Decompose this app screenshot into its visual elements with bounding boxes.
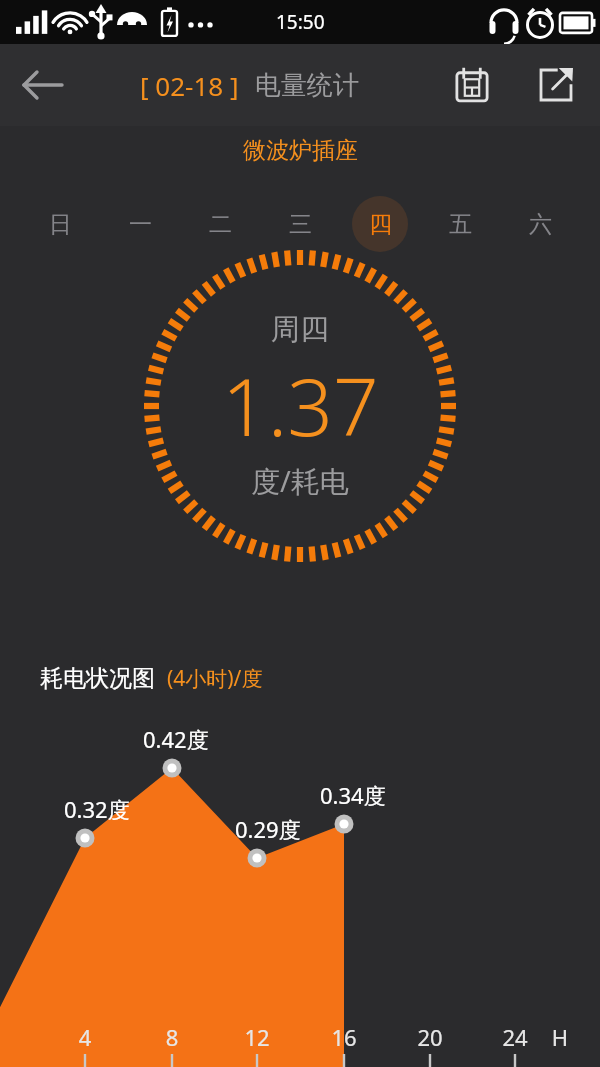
staticText: 度/耗电 [251, 461, 349, 501]
staticText: H [540, 1022, 580, 1052]
staticText: 1.37 [222, 350, 379, 459]
staticText: 一 [129, 210, 152, 239]
staticText: 微波炉插座 [243, 136, 358, 165]
button[interactable]: 五 [432, 196, 488, 252]
staticText: 15:50 [276, 9, 325, 35]
staticText: 三 [289, 210, 312, 239]
staticText: 耗电状况图 [40, 664, 155, 693]
staticText: 16 [324, 1022, 364, 1052]
staticText: 周四 [271, 311, 329, 348]
button[interactable]: 一 [112, 196, 168, 252]
staticText: 8 [152, 1022, 192, 1052]
button[interactable]: Month view [444, 57, 500, 113]
button[interactable]: 四 [352, 196, 408, 252]
staticText: 四 [369, 210, 392, 239]
button[interactable]: 日 [32, 196, 88, 252]
button[interactable]: 三 [272, 196, 328, 252]
staticText: 六 [529, 210, 552, 239]
staticText: 4 [65, 1022, 105, 1052]
button[interactable]: 二 [192, 196, 248, 252]
staticText: 日 [49, 210, 72, 239]
staticText: 0.34度 [320, 780, 386, 810]
staticText: 20 [410, 1022, 450, 1052]
staticText: 电量统计 [255, 69, 359, 102]
button[interactable]: Back [12, 54, 74, 116]
staticText: 0.32度 [64, 794, 130, 824]
staticText: (4小时)/度 [167, 664, 263, 693]
button[interactable]: 六 [512, 196, 568, 252]
staticText: 24 [495, 1022, 535, 1052]
staticText: 12 [237, 1022, 277, 1052]
staticText: 0.29度 [235, 814, 301, 844]
staticText: 0.42度 [143, 724, 209, 754]
button[interactable]: Share [528, 57, 584, 113]
staticText: 二 [209, 210, 232, 239]
staticText: 五 [449, 210, 472, 239]
staticText: [ 02-18 ] [140, 68, 239, 103]
